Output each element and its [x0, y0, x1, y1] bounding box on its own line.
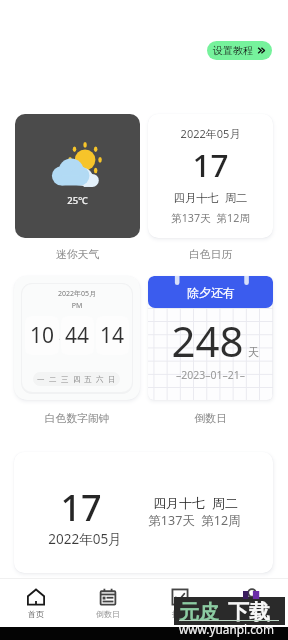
- staticText: 17: [148, 143, 273, 186]
- staticText: 天: [248, 345, 259, 359]
- button[interactable]: 设置教程: [207, 41, 272, 60]
- staticText: 第137天 第12周: [148, 211, 273, 226]
- button[interactable]: 2022年05月: [148, 114, 273, 238]
- staticText: PM: [14, 301, 140, 311]
- staticText: 我的: [244, 609, 260, 619]
- staticText: 六: [96, 375, 104, 384]
- staticText: 日: [108, 375, 116, 384]
- staticText: 2022年05月: [14, 289, 140, 299]
- button[interactable]: Profile: [216, 579, 288, 627]
- staticText: 25℃: [15, 194, 140, 207]
- staticText: 除夕还有: [187, 285, 235, 300]
- staticText: 五: [84, 375, 92, 384]
- staticText: 一: [37, 375, 45, 384]
- staticText: 四月十七 周二: [133, 494, 258, 512]
- staticText: 倒数日: [96, 609, 120, 619]
- staticText: 14: [100, 321, 125, 350]
- staticText: 打卡: [172, 609, 188, 619]
- staticText: 248: [148, 312, 270, 369]
- staticText: 元皮: [179, 600, 219, 625]
- staticText: 44: [65, 321, 90, 350]
- staticText: 倒数日: [148, 412, 273, 426]
- staticText: 四月十七 周二: [148, 190, 273, 205]
- button[interactable]: 除夕还有: [148, 276, 273, 400]
- staticText: 下载: [228, 599, 270, 625]
- staticText: www.yuanpi.com: [179, 621, 275, 637]
- staticText: –2023–01–21–: [148, 368, 273, 382]
- staticText: 首页: [28, 609, 44, 619]
- staticText: 三: [61, 375, 69, 384]
- staticText: 2022年05月: [148, 126, 273, 141]
- staticText: 迷你天气: [15, 248, 140, 262]
- button[interactable]: 25℃: [15, 114, 140, 238]
- staticText: 10: [30, 321, 55, 350]
- staticText: 17: [14, 483, 148, 532]
- button[interactable]: Check in: [144, 579, 216, 627]
- staticText: 第137天 第12周: [132, 512, 257, 529]
- staticText: 白色数字闹钟: [14, 412, 140, 426]
- button[interactable]: 2022年05月: [14, 276, 140, 400]
- staticText: 四: [73, 375, 81, 384]
- staticText: 白色日历: [148, 248, 273, 262]
- staticText: 2022年05月: [18, 530, 152, 548]
- button[interactable]: Home: [0, 579, 72, 627]
- button[interactable]: Countdown: [72, 579, 144, 627]
- staticText: 设置教程: [213, 44, 253, 57]
- staticText: 二: [49, 375, 57, 384]
- button[interactable]: 17: [14, 452, 273, 573]
